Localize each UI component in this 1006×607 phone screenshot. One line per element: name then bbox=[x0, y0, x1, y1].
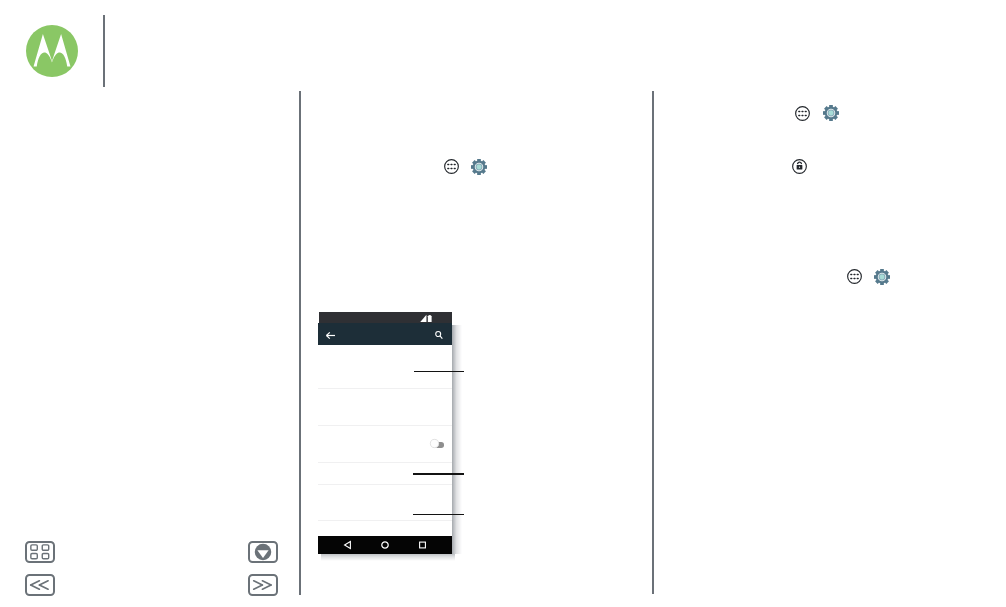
button[interactable]: Settings bbox=[471, 159, 487, 175]
button[interactable]: Contents bbox=[25, 541, 55, 563]
button[interactable]: Settings bbox=[874, 269, 890, 285]
button[interactable]: Previous page bbox=[25, 574, 55, 596]
button[interactable]: Apps bbox=[847, 269, 862, 284]
button[interactable]: Settings bbox=[823, 105, 839, 121]
button[interactable]: Toggle setting bbox=[422, 435, 450, 451]
button[interactable]: Next page bbox=[248, 574, 278, 596]
button[interactable]: Search bbox=[431, 327, 447, 343]
button[interactable]: Apps bbox=[444, 159, 459, 174]
button[interactable]: Back bbox=[322, 327, 338, 343]
button[interactable]: Play video bbox=[248, 541, 278, 563]
button[interactable]: Apps bbox=[795, 106, 810, 121]
button[interactable]: Motorola bbox=[26, 25, 78, 77]
button[interactable]: Screen lock bbox=[792, 159, 807, 174]
